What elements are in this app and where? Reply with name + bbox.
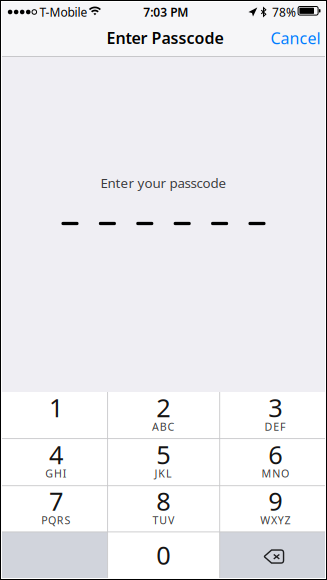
staticText: 5: [156, 437, 170, 471]
staticText: 7: [49, 484, 63, 518]
staticText: PQRS: [41, 513, 70, 527]
button[interactable]: 9: [220, 486, 325, 532]
staticText: 6: [268, 437, 282, 471]
button[interactable]: Delete: [220, 532, 325, 578]
staticText: 0: [156, 538, 170, 572]
staticText: WXYZ: [260, 513, 290, 527]
staticText: 78%: [272, 4, 296, 20]
button[interactable]: 5: [108, 439, 220, 486]
button[interactable]: 2: [108, 392, 220, 439]
staticText: DEF: [265, 419, 286, 434]
staticText: TUV: [153, 513, 174, 527]
staticText: 4: [49, 437, 63, 471]
staticText: Cancel: [270, 27, 320, 49]
staticText: MNO: [262, 466, 289, 481]
staticText: JKL: [155, 466, 172, 481]
staticText: Enter your passcode: [100, 174, 226, 192]
button[interactable]: 6: [220, 439, 325, 486]
staticText: Enter Passcode: [106, 27, 223, 48]
button[interactable]: 1: [2, 392, 108, 439]
staticText: GHI: [45, 466, 67, 481]
staticText: 7:03 PM: [143, 4, 188, 20]
staticText: 1: [49, 391, 63, 424]
button[interactable]: 3: [220, 392, 325, 439]
button[interactable]: Cancel: [258, 20, 325, 59]
staticText: 9: [268, 484, 282, 518]
staticText: 2: [156, 391, 170, 424]
button[interactable]: 0: [108, 532, 220, 578]
staticText: 8: [156, 484, 170, 518]
button[interactable]: 4: [2, 439, 108, 486]
button[interactable]: 8: [108, 486, 220, 532]
button[interactable]: 7: [2, 486, 108, 532]
staticText: 3: [268, 391, 282, 424]
staticText: T-Mobile: [39, 4, 87, 20]
staticText: ABC: [152, 419, 175, 434]
